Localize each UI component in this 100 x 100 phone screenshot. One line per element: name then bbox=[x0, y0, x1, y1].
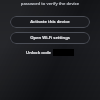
staticText: Activate this device bbox=[30, 19, 70, 25]
button[interactable]: Open Wi-Fi settings bbox=[10, 32, 90, 44]
staticText: Open Wi-Fi settings bbox=[30, 35, 70, 41]
staticText: password to verify the device bbox=[9, 1, 91, 7]
button[interactable]: Unlock code bbox=[26, 49, 74, 56]
staticText: Unlock code bbox=[26, 50, 51, 56]
button[interactable]: Activate this device bbox=[10, 16, 90, 28]
